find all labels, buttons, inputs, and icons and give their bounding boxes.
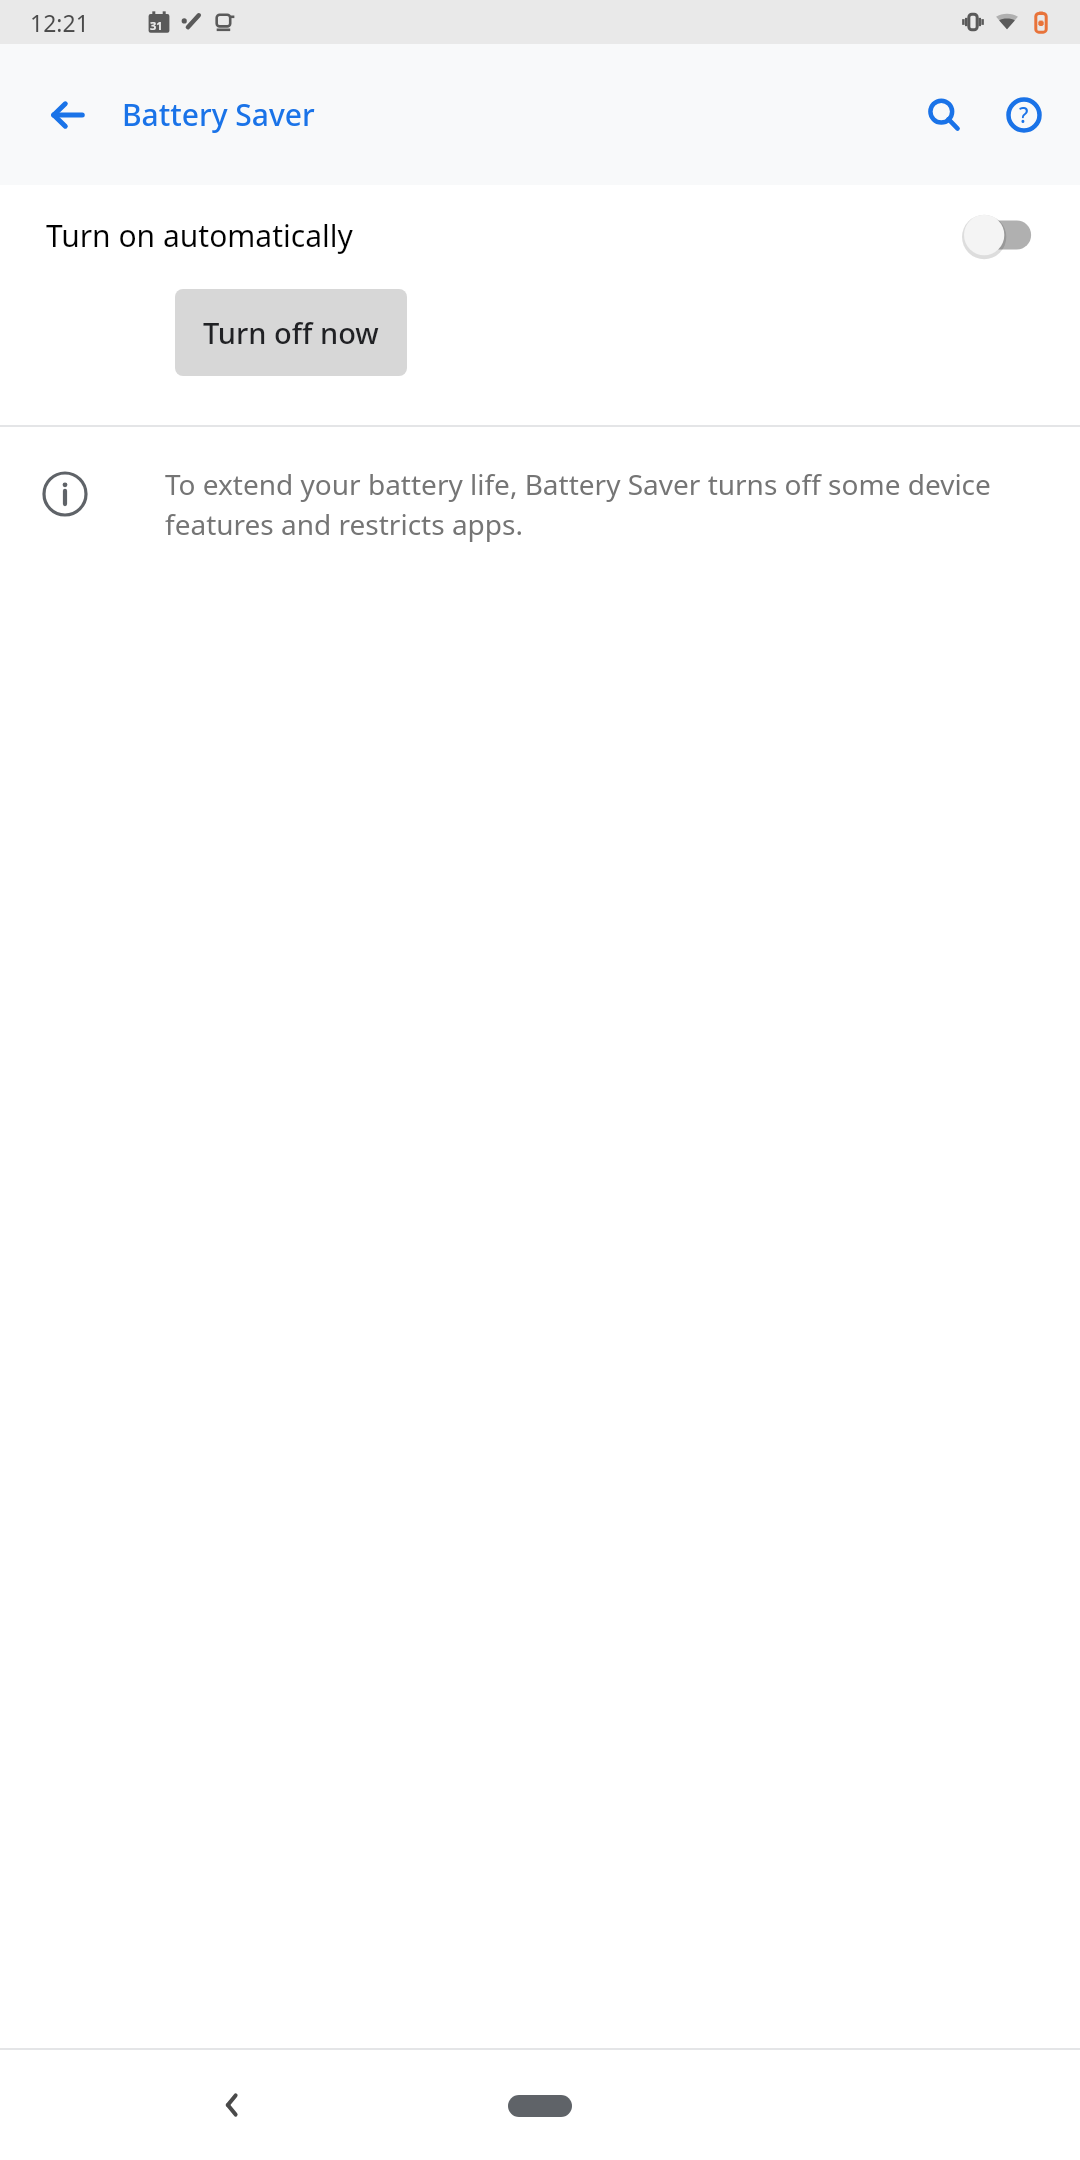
button[interactable]: Help	[990, 81, 1058, 149]
button[interactable]: Search	[910, 81, 978, 149]
staticText: To extend your battery life, Battery Sav…	[165, 465, 1020, 544]
button[interactable]: Back	[40, 87, 96, 143]
staticText: Turn off now	[203, 313, 379, 352]
staticText: Battery Saver	[122, 94, 315, 135]
staticText: 12:21	[30, 7, 89, 38]
staticText: 31	[150, 18, 163, 33]
button[interactable]: Turn off now	[175, 289, 407, 376]
staticText: Turn on automatically	[46, 215, 962, 256]
button[interactable]: Turn on automatically	[0, 185, 1080, 285]
button[interactable]: Home	[480, 2081, 600, 2131]
button[interactable]: Back	[196, 2069, 268, 2141]
staticText: ?	[1019, 101, 1029, 130]
button[interactable]: Turn on automatically toggle	[962, 211, 1034, 259]
